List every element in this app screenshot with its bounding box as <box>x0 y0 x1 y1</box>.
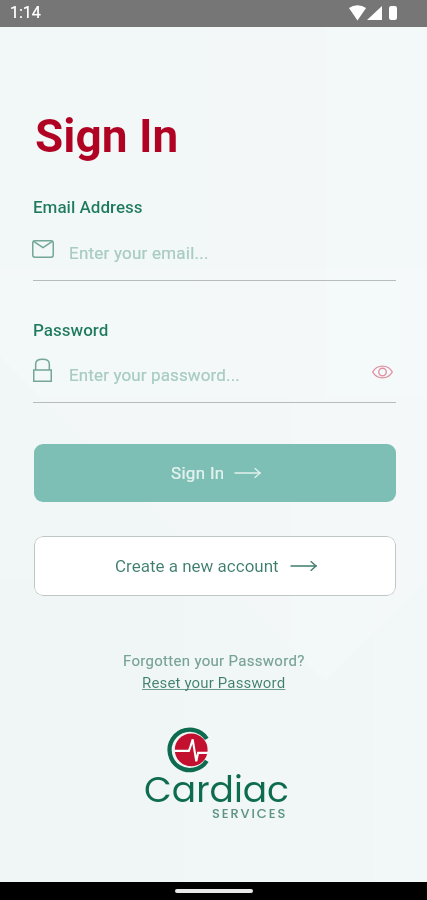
button[interactable]: Show password <box>368 360 396 384</box>
staticText: Sign In <box>35 109 179 163</box>
staticText: Forgotten your Password? <box>123 652 305 670</box>
staticText: 1:14 <box>10 3 41 22</box>
staticText: Enter your email... <box>69 243 209 263</box>
button[interactable]: Create a new account <box>34 536 396 596</box>
staticText: Cardiac <box>144 764 289 814</box>
button[interactable]: Reset your Password <box>142 674 286 692</box>
button[interactable]: Sign In <box>34 444 396 502</box>
staticText: SERVICES <box>212 804 288 822</box>
staticText: Password <box>33 320 109 340</box>
staticText: Enter your password... <box>69 365 240 385</box>
staticText: Create a new account <box>115 556 279 576</box>
staticText: Email Address <box>33 197 143 217</box>
staticText: Reset your Password <box>142 674 286 692</box>
staticText: Sign In <box>171 463 225 483</box>
